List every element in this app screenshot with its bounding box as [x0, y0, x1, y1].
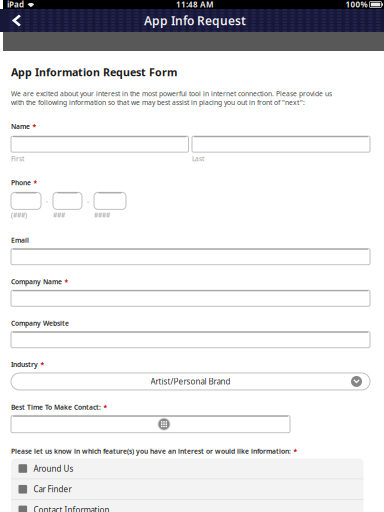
staticText: Artist/Personal Brand [150, 376, 230, 387]
staticText: Phone [11, 178, 31, 187]
button[interactable] [11, 416, 290, 433]
staticText: First [11, 154, 24, 163]
staticText: * [33, 178, 37, 187]
staticText: App Information Request Form [11, 65, 177, 79]
staticText: Last [192, 154, 204, 163]
staticText: Name [11, 122, 30, 131]
button[interactable]: Back [0, 9, 32, 32]
staticText: Industry [11, 360, 38, 369]
staticText: - [46, 196, 48, 205]
staticText: App Info Request [144, 12, 246, 28]
staticText: * [293, 447, 297, 456]
staticText: Company Name [11, 277, 62, 286]
staticText: * [32, 122, 36, 131]
staticText: ### [53, 210, 65, 219]
staticText: 11:48 AM [176, 0, 214, 10]
staticText: * [64, 277, 68, 286]
staticText: #### [94, 210, 110, 219]
staticText: Email [11, 236, 29, 245]
staticText: * [103, 403, 107, 412]
staticText: (###) [11, 210, 27, 219]
button[interactable]: Car Finder [11, 479, 363, 499]
button[interactable]: Contact Information [11, 500, 363, 512]
staticText: iPad [7, 0, 24, 10]
staticText: Best Time To Make Contact: [11, 403, 101, 412]
button[interactable]: Artist/Personal Brand [11, 373, 370, 390]
staticText: Around Us [34, 463, 74, 474]
staticText: We are excited about your interest in th… [11, 89, 332, 107]
button[interactable]: Around Us [11, 459, 363, 478]
staticText: Car Finder [34, 484, 72, 494]
staticText: * [40, 360, 44, 369]
staticText: Please let us know in which feature(s) y… [11, 447, 291, 456]
staticText: 100% [345, 0, 367, 10]
staticText: Company Website [11, 319, 69, 328]
staticText: - [87, 196, 89, 205]
staticText: Contact Information [34, 505, 110, 512]
